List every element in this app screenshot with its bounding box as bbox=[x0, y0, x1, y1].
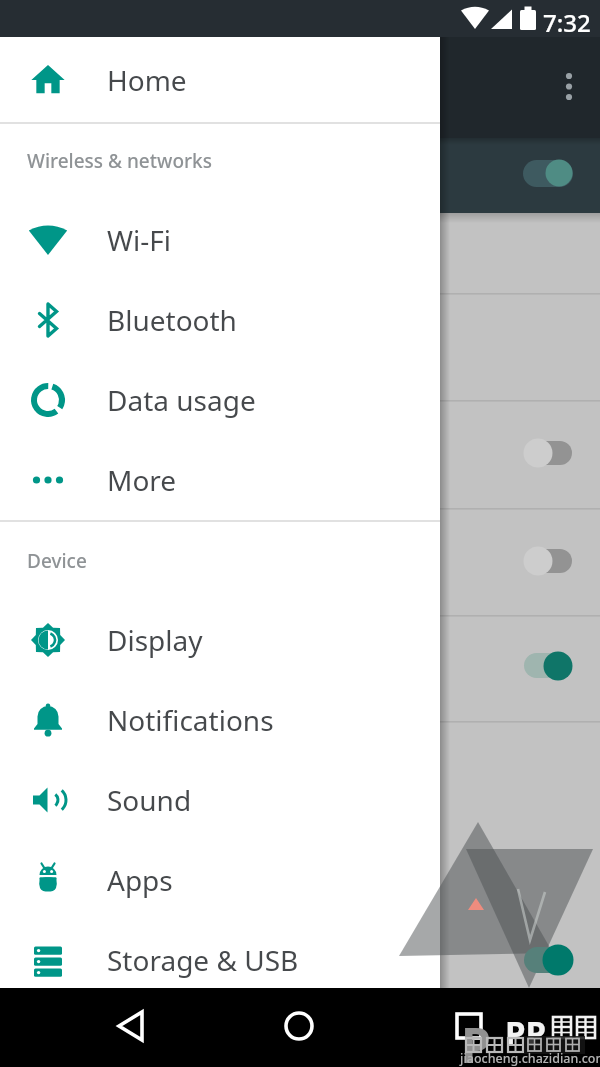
button[interactable]: More bbox=[0, 440, 440, 520]
button[interactable] bbox=[269, 998, 329, 1058]
button[interactable] bbox=[513, 938, 585, 984]
button[interactable] bbox=[549, 58, 591, 116]
staticText: Display bbox=[107, 621, 203, 659]
staticText: Data usage bbox=[107, 381, 256, 419]
staticText: Storage & USB bbox=[107, 941, 299, 979]
staticText: Wi-Fi bbox=[107, 221, 172, 259]
staticText: Wireless & networks bbox=[27, 148, 212, 174]
staticText: Sound bbox=[107, 781, 192, 819]
button[interactable] bbox=[513, 429, 585, 477]
button[interactable] bbox=[513, 642, 585, 690]
button[interactable] bbox=[513, 537, 585, 585]
staticText: Home bbox=[107, 61, 187, 99]
button[interactable] bbox=[513, 148, 585, 200]
staticText: jiaocheng.chazidian.com bbox=[460, 1050, 600, 1067]
button[interactable]: Home bbox=[0, 40, 440, 120]
button[interactable]: Apps bbox=[0, 840, 440, 920]
staticText: Bluetooth bbox=[107, 301, 237, 339]
staticText: More bbox=[107, 461, 177, 499]
staticText: 7:32 bbox=[543, 6, 591, 39]
staticText: PP bbox=[505, 1010, 546, 1055]
button[interactable]: Wi-Fi bbox=[0, 200, 440, 280]
button[interactable]: Data usage bbox=[0, 360, 440, 440]
button[interactable]: Display bbox=[0, 600, 440, 680]
staticText: Device bbox=[27, 548, 87, 574]
button[interactable]: Bluetooth bbox=[0, 280, 440, 360]
staticText: Notifications bbox=[107, 701, 274, 739]
button[interactable]: Notifications bbox=[0, 680, 440, 760]
button[interactable]: Sound bbox=[0, 760, 440, 840]
staticText: P bbox=[461, 1012, 491, 1067]
button[interactable]: Storage & USB bbox=[0, 920, 440, 1000]
button[interactable] bbox=[439, 998, 499, 1058]
button[interactable] bbox=[100, 998, 160, 1058]
staticText: Apps bbox=[107, 861, 173, 899]
